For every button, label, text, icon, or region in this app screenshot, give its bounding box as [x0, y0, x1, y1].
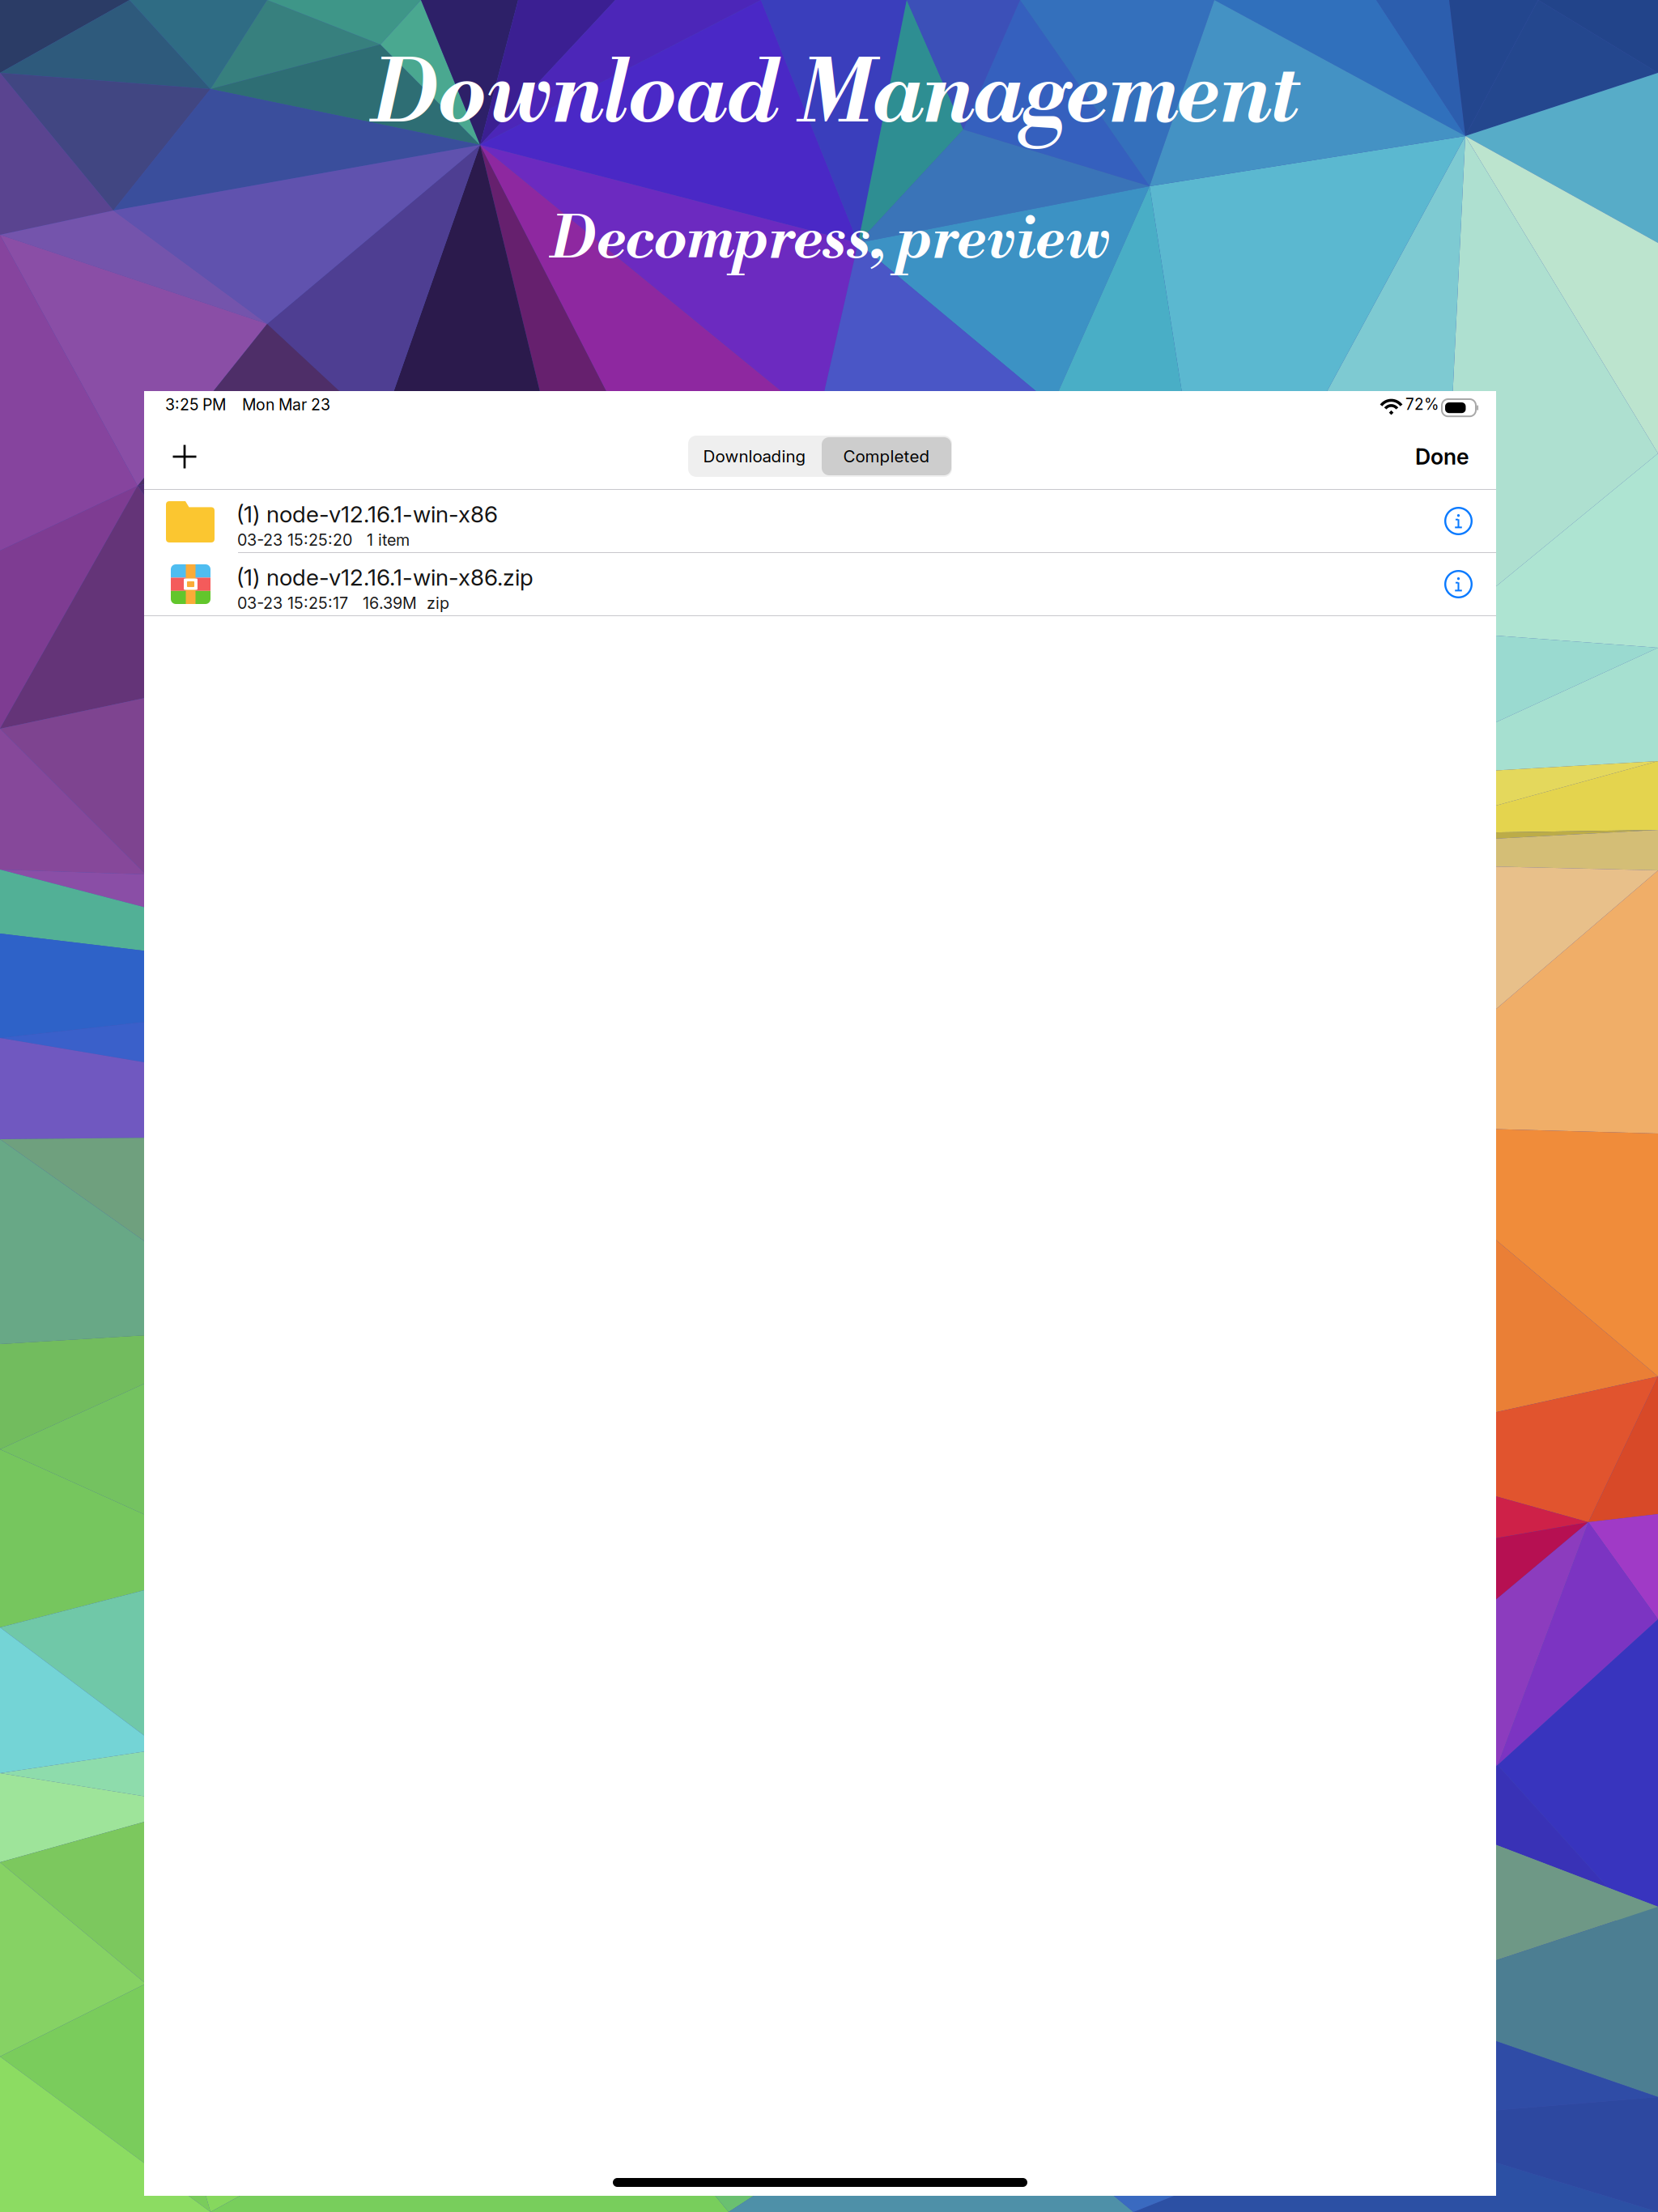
- staticText: 72%: [1405, 395, 1439, 414]
- staticText: Decompress, preview: [551, 204, 1110, 277]
- staticText: (1) node-v12.16.1-win-x86.zip: [236, 564, 534, 591]
- button[interactable]: (1) node-v12.16.1-win-x86.zip: [144, 553, 1496, 616]
- button[interactable]: (1) node-v12.16.1-win-x86: [144, 490, 1496, 553]
- button[interactable]: Downloading: [688, 436, 821, 477]
- staticText: 3:25 PM: [165, 395, 226, 414]
- staticText: Download Management: [373, 43, 1300, 149]
- staticText: Completed: [843, 446, 930, 466]
- staticText: 03-23 15:25:20 1 item: [237, 530, 410, 550]
- staticText: 03-23 15:25:17 16.39M zip: [237, 593, 449, 613]
- button[interactable]: Done: [1380, 426, 1469, 487]
- staticText: Mon Mar 23: [242, 395, 330, 414]
- staticText: Done: [1415, 444, 1469, 470]
- staticText: (1) node-v12.16.1-win-x86: [236, 500, 498, 528]
- staticText: Downloading: [703, 446, 806, 466]
- button[interactable]: Add download: [151, 426, 219, 487]
- button[interactable]: Completed: [821, 436, 952, 477]
